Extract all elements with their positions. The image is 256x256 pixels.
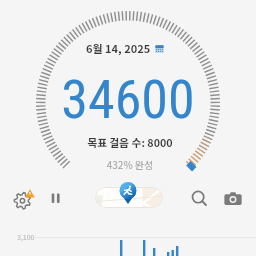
button[interactable]: Map — [95, 187, 163, 208]
staticText: 목표 걸음 수: 8000 — [2, 135, 256, 150]
button[interactable]: Settings — [13, 188, 35, 210]
staticText: 6월 14, 2025 — [86, 40, 151, 56]
button[interactable]: Pause — [44, 187, 68, 211]
staticText: 3,100 — [17, 232, 35, 242]
button[interactable]: Search — [188, 187, 211, 210]
staticText: 432% 완성 — [2, 157, 256, 171]
button[interactable]: Camera — [221, 187, 245, 211]
staticText: 34600 — [0, 68, 256, 131]
